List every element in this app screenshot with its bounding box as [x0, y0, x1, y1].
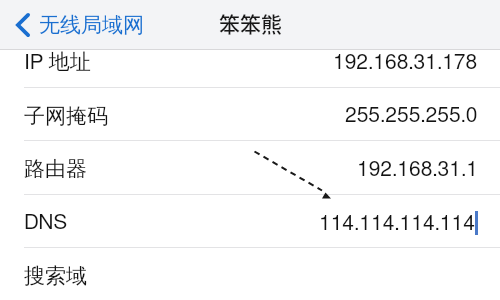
button[interactable]: 子网掩码 [0, 88, 500, 141]
button[interactable]: Back [16, 3, 144, 47]
staticText: 路由器 [24, 156, 87, 182]
staticText: 笨笨熊 [219, 8, 282, 38]
staticText: 子网掩码 [24, 103, 108, 129]
staticText: DNS [24, 212, 68, 233]
staticText: IP 地址 [24, 49, 91, 75]
button[interactable]: IP 地址 [0, 34, 500, 88]
button[interactable]: 搜索域 [0, 248, 500, 300]
staticText: 192.168.31.1 [357, 159, 478, 180]
staticText: 114.114.114.114 [319, 213, 475, 234]
button[interactable]: 路由器 [0, 141, 500, 195]
button[interactable]: DNS [0, 195, 500, 248]
staticText: 搜索域 [24, 263, 87, 289]
other: Back [16, 13, 30, 37]
staticText: 无线局域网 [39, 12, 144, 38]
staticText: 255.255.255.0 [345, 105, 478, 126]
staticText: 192.168.31.178 [333, 52, 478, 73]
